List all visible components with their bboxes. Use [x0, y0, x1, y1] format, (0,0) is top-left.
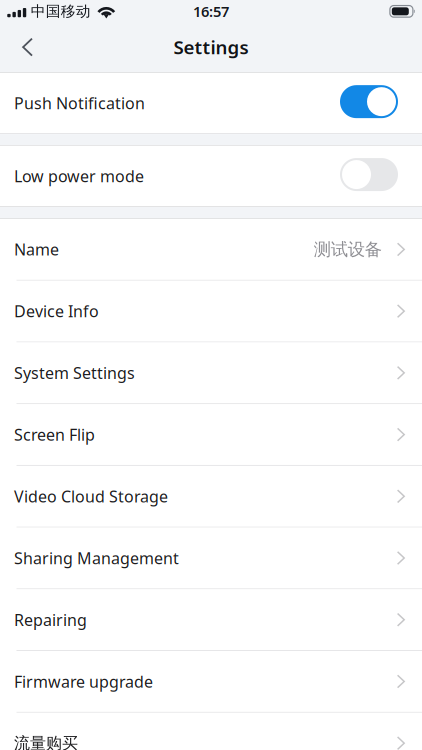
- button[interactable]: Low power mode: [0, 146, 422, 206]
- button[interactable]: Video Cloud Storage: [0, 466, 422, 528]
- button[interactable]: Repairing: [0, 589, 422, 651]
- button[interactable]: System Settings: [0, 342, 422, 404]
- staticText: Name: [14, 239, 59, 260]
- staticText: Device Info: [14, 300, 99, 322]
- button[interactable]: Firmware upgrade: [0, 651, 422, 713]
- staticText: Settings: [173, 35, 248, 59]
- button[interactable]: Back: [5, 25, 49, 69]
- button[interactable]: Screen Flip: [0, 404, 422, 466]
- staticText: System Settings: [14, 362, 135, 383]
- staticText: Low power mode: [14, 165, 144, 187]
- button[interactable]: Sharing Management: [0, 528, 422, 589]
- button[interactable]: 流量购买: [0, 713, 422, 750]
- staticText: 中国移动: [31, 2, 91, 20]
- staticText: Screen Flip: [14, 424, 95, 445]
- staticText: 流量购买: [14, 733, 78, 750]
- staticText: Firmware upgrade: [14, 671, 153, 692]
- staticText: 测试设备: [314, 239, 382, 260]
- button[interactable]: Device Info: [0, 281, 422, 342]
- staticText: 16:57: [193, 2, 229, 21]
- button[interactable]: Push Notification: [0, 73, 422, 133]
- button[interactable]: Name: [0, 219, 422, 281]
- staticText: Repairing: [14, 609, 87, 630]
- staticText: Video Cloud Storage: [14, 486, 168, 507]
- staticText: Push Notification: [14, 92, 145, 114]
- staticText: Sharing Management: [14, 547, 179, 569]
